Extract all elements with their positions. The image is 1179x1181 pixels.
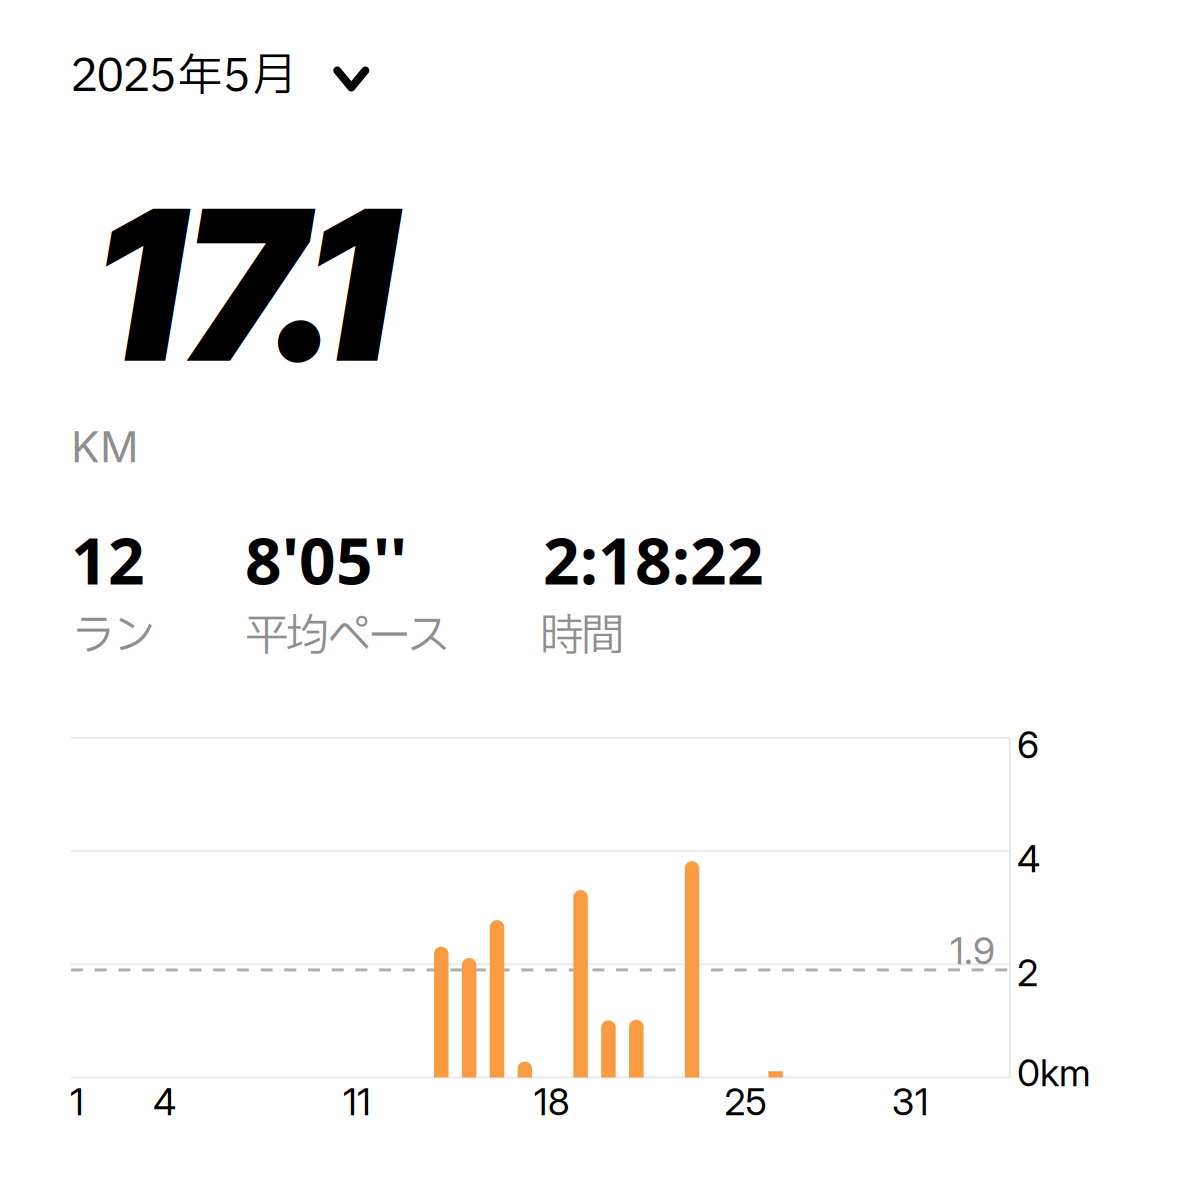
staticText: 2025 <box>70 43 177 111</box>
staticText: ラン <box>72 604 157 670</box>
staticText: 25 <box>724 1079 767 1124</box>
staticText: 2:18:22 <box>543 516 764 603</box>
staticText: 4 <box>153 1079 176 1124</box>
staticText: 時間 <box>540 604 625 670</box>
staticText: 5 <box>222 43 251 111</box>
staticText: 8'05'' <box>245 516 407 603</box>
staticText: 17.1 <box>96 158 394 411</box>
staticText: 1.9 <box>950 928 995 973</box>
staticText: 月 <box>251 43 296 111</box>
staticText: 2 <box>1017 950 1038 995</box>
staticText: 1 <box>70 1079 84 1124</box>
staticText: 4 <box>1017 836 1040 881</box>
staticText: 0km <box>1017 1050 1091 1095</box>
staticText: 18 <box>534 1079 570 1124</box>
staticText: 6 <box>1017 722 1039 767</box>
button[interactable]: 2025 <box>70 50 365 104</box>
staticText: 12 <box>71 516 145 603</box>
staticText: 11 <box>343 1079 371 1124</box>
staticText: KM <box>71 421 139 473</box>
staticText: 平均ペース <box>245 604 450 670</box>
staticText: 年 <box>177 43 222 111</box>
staticText: 31 <box>892 1079 929 1124</box>
